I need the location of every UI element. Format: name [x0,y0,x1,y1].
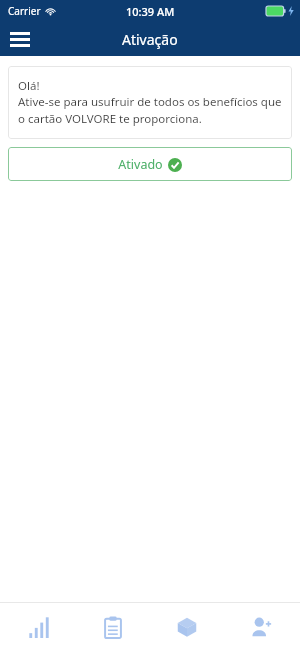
button[interactable]: Products [152,603,222,650]
staticText: Carrier [8,4,41,18]
button[interactable]: Reports [78,603,148,650]
staticText: Olá! [18,78,40,94]
button[interactable]: Olá! [8,66,292,139]
button[interactable]: Menu [0,22,40,56]
button[interactable]: Add contact [226,603,296,650]
staticText: Ativado [118,156,163,173]
staticText: Ative-se para usufruir de todos os benef… [18,94,282,127]
staticText: Ativação [122,30,178,49]
button[interactable]: Statistics [4,603,74,650]
button[interactable]: Ativado [8,147,292,181]
staticText: 10:39 AM [126,4,175,19]
